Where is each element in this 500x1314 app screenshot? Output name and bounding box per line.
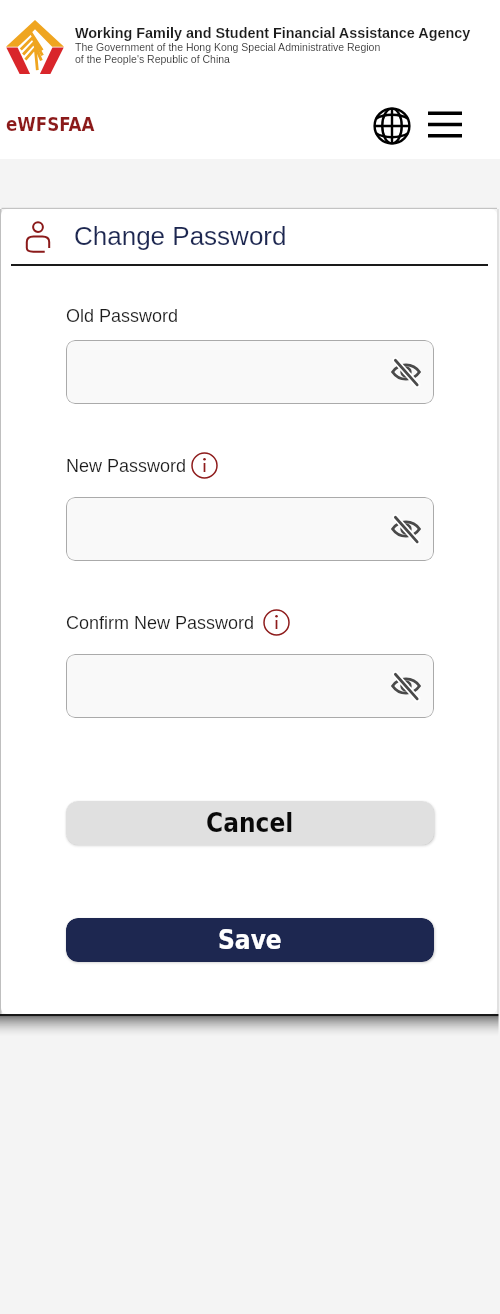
staticText: Cancel — [206, 808, 294, 838]
button[interactable]: Cancel — [66, 801, 434, 845]
staticText: Save — [218, 925, 282, 955]
staticText: Change Password — [74, 221, 287, 250]
button[interactable]: Save — [66, 918, 434, 962]
staticText: of the People's Republic of China — [75, 53, 230, 65]
button[interactable]: Show password — [386, 666, 426, 706]
button[interactable]: Show password — [386, 509, 426, 549]
staticText: New Password — [66, 456, 187, 476]
button[interactable]: Change language — [370, 104, 414, 148]
button[interactable]: Menu — [422, 102, 467, 147]
staticText: The Government of the Hong Kong Special … — [75, 41, 381, 53]
button[interactable]: Show password — [386, 352, 426, 392]
staticText: eWFSFAA — [6, 114, 95, 136]
staticText: Old Password — [66, 306, 179, 326]
staticText: Confirm New Password — [66, 613, 255, 633]
staticText: Working Family and Student Financial Ass… — [75, 25, 471, 41]
